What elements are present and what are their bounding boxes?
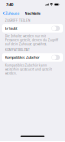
staticText: Kompatibles Zubehör kann weiterhin geste… [5, 63, 52, 75]
staticText: KOMPATIBILITÄT [5, 48, 30, 52]
staticText: Die Inhalte werden nur mit Personen gete… [5, 34, 58, 46]
staticText: ZUGRIFF TEILEN [5, 19, 30, 23]
button[interactable]: Schalter [51, 55, 60, 60]
staticText: 7:40 [6, 2, 13, 7]
staticText: Kompatibles Zubehör [5, 55, 40, 60]
button[interactable]: Erlaubt [2, 24, 63, 33]
button[interactable]: Kompatibles Zubehör [2, 53, 63, 62]
staticText: Erlaubt [5, 26, 17, 31]
staticText: Nachteile [24, 11, 40, 16]
button[interactable]: Zuhause [0, 9, 19, 17]
button[interactable]: Schalter [51, 26, 60, 31]
staticText: Zuhause [5, 11, 19, 16]
